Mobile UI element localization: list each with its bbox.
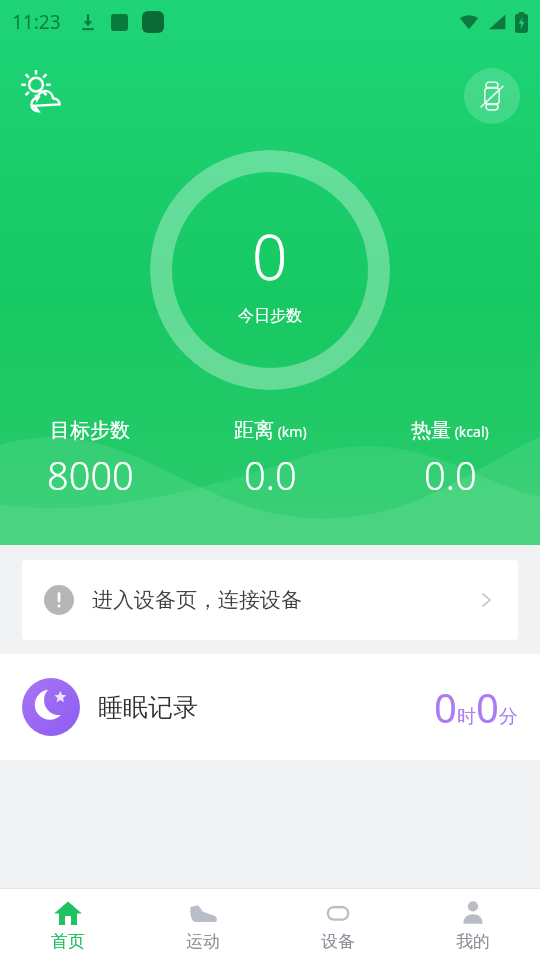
staticText: 睡眠记录 <box>98 692 198 723</box>
button[interactable]: 热量 (kcal) <box>360 418 540 501</box>
staticText: 0.0 <box>424 449 477 501</box>
button[interactable]: 设备 <box>270 889 405 960</box>
staticText: 0 <box>252 214 288 298</box>
staticText: 运动 <box>186 931 220 952</box>
button[interactable]: 睡眠记录 <box>0 654 540 760</box>
staticText: 热量 (kcal) <box>411 418 489 443</box>
staticText: 0时0分 <box>434 680 518 734</box>
staticText: 目标步数 <box>50 418 130 443</box>
staticText: 8000 <box>47 449 134 501</box>
button[interactable]: 目标步数 <box>0 418 180 501</box>
button[interactable]: 我的 <box>405 889 540 960</box>
button[interactable]: 运动 <box>135 889 270 960</box>
button[interactable]: 进入设备页，连接设备 <box>22 560 518 640</box>
button[interactable]: 距离 (km) <box>180 418 360 501</box>
staticText: 进入设备页，连接设备 <box>92 587 302 613</box>
button[interactable]: Device not connected <box>464 68 520 124</box>
staticText: 11:23 <box>12 9 61 35</box>
button[interactable]: 0 <box>150 150 390 390</box>
staticText: 距离 (km) <box>234 418 307 443</box>
staticText: 首页 <box>51 931 85 952</box>
staticText: 我的 <box>456 931 490 952</box>
button[interactable]: Weather <box>16 66 68 118</box>
staticText: 0.0 <box>244 449 297 501</box>
button[interactable]: 首页 <box>0 889 135 960</box>
staticText: 今日步数 <box>238 306 302 326</box>
staticText: 设备 <box>321 931 355 952</box>
